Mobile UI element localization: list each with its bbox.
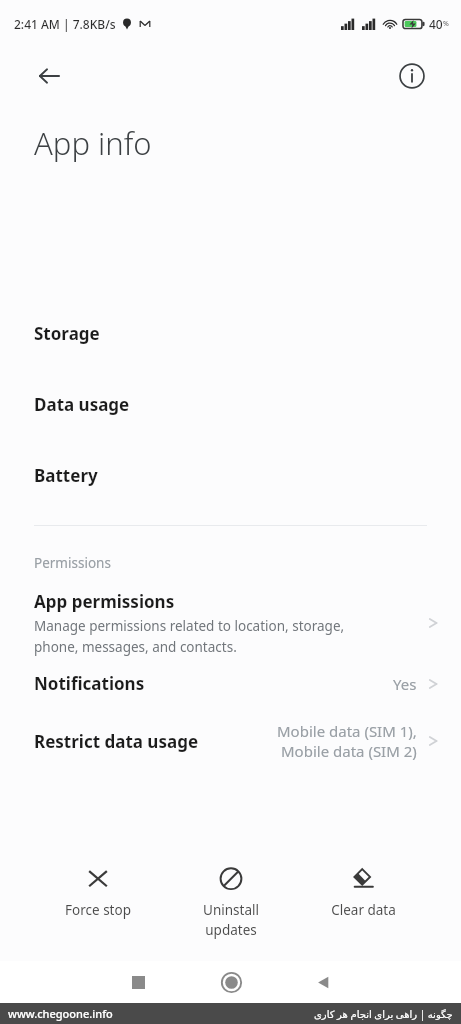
staticText: Force stop [65, 901, 131, 919]
staticText: Data usage [34, 393, 130, 416]
button[interactable]: Notifications [0, 672, 461, 695]
staticText: Uninstall updates [203, 901, 259, 939]
staticText: Battery [34, 464, 98, 487]
button[interactable]: Data usage [0, 347, 461, 418]
staticText: چگونه | راهی برای انجام هر کاری [314, 1007, 453, 1021]
staticText: Mobile data (SIM 2) [281, 741, 417, 761]
staticText: Storage [34, 322, 100, 345]
staticText: % [443, 19, 449, 29]
button[interactable]: Force stop [38, 862, 158, 923]
button[interactable]: App details info [391, 55, 433, 97]
staticText: 2:41 AM | 7.8KB/s [14, 16, 116, 32]
staticText: Permissions [34, 554, 111, 572]
staticText: www.chegoone.info [8, 1006, 113, 1021]
staticText: App permissions [34, 590, 175, 613]
staticText: App info [34, 122, 152, 164]
button[interactable]: Recent apps [118, 962, 158, 1002]
staticText: Restrict data usage [34, 730, 199, 753]
button[interactable]: Storage [0, 322, 461, 347]
staticText: Manage permissions related to location, … [34, 617, 345, 656]
button[interactable]: Uninstall updates [171, 862, 291, 943]
staticText: Clear data [331, 901, 396, 919]
button[interactable]: Home [210, 961, 252, 1003]
staticText: 40 [429, 16, 443, 32]
button[interactable]: Clear data [303, 862, 423, 923]
button[interactable]: Back [303, 962, 343, 1002]
button[interactable]: App permissions [0, 590, 461, 656]
staticText: Notifications [34, 672, 145, 695]
staticText: Mobile data (SIM 1), [277, 721, 417, 741]
button[interactable]: Restrict data usage [0, 721, 461, 761]
button[interactable]: Back [26, 53, 72, 99]
staticText: Yes [393, 674, 417, 694]
button[interactable]: Battery [0, 418, 461, 489]
